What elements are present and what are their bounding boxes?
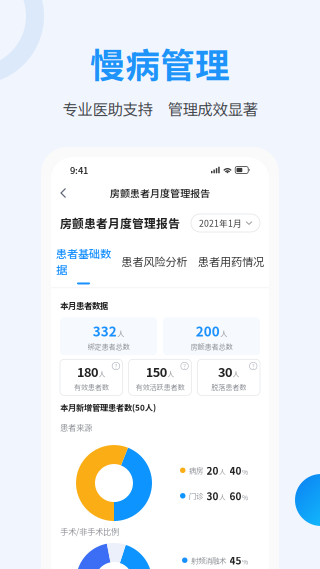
staticText: % <box>242 557 248 567</box>
staticText: 患者来源 <box>60 421 92 433</box>
staticText: % <box>242 467 248 477</box>
staticText: 180 <box>77 362 98 381</box>
staticText: 慢病管理 <box>90 38 230 88</box>
staticText: 人 <box>219 467 226 477</box>
staticText: 人 <box>167 369 174 379</box>
button[interactable]: 患者风险分析 <box>121 253 187 276</box>
staticText: 9:41 <box>70 163 88 177</box>
staticText: 射频消融术 <box>191 555 226 566</box>
staticText: 房颤患者总数 <box>190 341 232 352</box>
staticText: 2021年1月 <box>199 217 242 229</box>
staticText: 绑定患者总数 <box>87 341 129 352</box>
staticText: 人 <box>220 328 227 338</box>
staticText: 房颤患者月度管理报告 <box>60 214 180 231</box>
staticText: 患者基础数据 <box>56 245 111 277</box>
staticText: 150 <box>146 362 167 381</box>
staticText: 30 <box>206 488 218 503</box>
staticText: 332 <box>93 321 117 340</box>
staticText: 病房 <box>189 465 203 476</box>
staticText: % <box>242 492 248 502</box>
staticText: ? <box>183 362 186 370</box>
staticText: ? <box>252 362 255 370</box>
staticText: 有效活跃患者数 <box>135 382 184 392</box>
staticText: 30 <box>218 362 232 381</box>
staticText: 人 <box>219 492 226 502</box>
button[interactable]: 患者用药情况 <box>198 253 264 276</box>
staticText: 专业医助支持 管理成效显著 <box>62 97 257 120</box>
staticText: 房颤患者月度管理报告 <box>110 186 210 200</box>
staticText: ? <box>114 362 117 370</box>
staticText: 200 <box>196 321 220 340</box>
staticText: 20 <box>206 463 218 478</box>
staticText: 人 <box>99 369 106 379</box>
staticText: 60 <box>229 488 241 503</box>
button[interactable]: 2021年1月 <box>191 214 260 232</box>
staticText: 手术/非手术比例 <box>60 525 119 537</box>
staticText: 45 <box>229 553 241 567</box>
staticText: 40 <box>229 463 241 478</box>
staticText: 本月患者数据 <box>60 299 108 311</box>
staticText: 人 <box>117 328 124 338</box>
staticText: 本月新增管理患者数(50人) <box>60 401 156 413</box>
button[interactable]: 患者基础数据 <box>56 245 111 284</box>
staticText: 患者风险分析 <box>121 253 187 269</box>
staticText: 脱落患者数 <box>211 382 246 392</box>
staticText: 人 <box>232 369 239 379</box>
staticText: 门诊 <box>189 490 203 501</box>
button[interactable]: 返回 <box>56 184 70 201</box>
staticText: 患者用药情况 <box>198 253 264 269</box>
staticText: 有效患者数 <box>74 382 109 392</box>
